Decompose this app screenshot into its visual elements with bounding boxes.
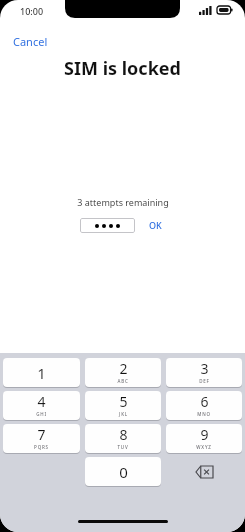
staticText: Cancel	[13, 34, 48, 49]
button[interactable]: 5	[85, 391, 161, 420]
staticText: 1	[37, 363, 46, 383]
staticText: 8	[119, 425, 128, 444]
staticText: MNO	[197, 411, 211, 417]
button[interactable]: 3	[166, 358, 242, 387]
button[interactable]: 7	[3, 424, 80, 453]
button[interactable]: 4	[3, 391, 80, 420]
staticText: 5	[119, 392, 128, 411]
button[interactable]: 6	[166, 391, 242, 420]
staticText: OK	[149, 219, 162, 231]
staticText: 10:00	[20, 5, 44, 17]
button[interactable]: 8	[85, 424, 161, 453]
button[interactable]: 9	[166, 424, 242, 453]
staticText: 3 attempts remaining	[77, 196, 169, 208]
staticText: 9	[200, 425, 209, 444]
button[interactable]: Cancel	[8, 31, 53, 52]
staticText: PQRS	[34, 444, 49, 450]
button[interactable]: OK	[146, 217, 165, 233]
button[interactable]: Delete	[166, 457, 242, 486]
staticText: SIM is locked	[64, 56, 181, 81]
staticText: 3	[200, 359, 209, 378]
staticText: GHI	[36, 411, 47, 417]
staticText: ABC	[117, 378, 129, 384]
staticText: 7	[37, 425, 46, 444]
staticText: 4	[37, 392, 46, 411]
button[interactable]: 1	[3, 358, 80, 387]
staticText: WXYZ	[196, 444, 212, 450]
staticText: 0	[119, 462, 128, 482]
staticText: 6	[200, 392, 209, 411]
button[interactable]	[80, 218, 135, 233]
staticText: DEF	[199, 378, 210, 384]
staticText: JKL	[119, 411, 128, 417]
staticText: TUV	[117, 444, 129, 450]
button[interactable]: 2	[85, 358, 161, 387]
staticText: 2	[119, 359, 128, 378]
button[interactable]: 0	[85, 457, 161, 486]
